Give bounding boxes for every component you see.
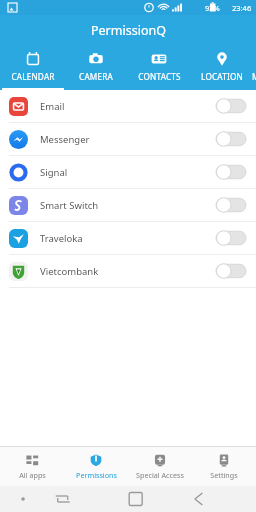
button[interactable]: Special Access [128,447,192,486]
staticText: Special Access [136,470,184,480]
button[interactable]: LOCATION [192,45,252,90]
button[interactable]: Toggle permission [216,131,246,147]
staticText: Email [40,100,216,113]
button[interactable]: M [252,45,256,90]
button[interactable]: CONTACTS [126,45,192,90]
staticText: Messenger [40,133,216,146]
staticText: All apps [19,470,46,480]
button[interactable]: Toggle permission [216,263,246,279]
staticText: M [252,71,256,82]
staticText: Vietcombank [40,265,216,278]
staticText: Settings [210,470,238,480]
staticText: Traveloka [40,232,216,245]
button[interactable]: Toggle permission [216,197,246,213]
staticText: 92% [205,3,220,13]
staticText: Permissions [76,470,117,480]
button[interactable]: Messenger [0,123,256,155]
button[interactable]: Email [0,90,256,122]
staticText: CAMERA [79,71,113,82]
button[interactable]: Toggle permission [216,98,246,114]
button[interactable]: All apps [0,447,64,486]
staticText: CONTACTS [138,71,181,82]
button[interactable]: Traveloka [0,222,256,254]
button[interactable]: Toggle permission [216,164,246,180]
button[interactable]: CAMERA [66,45,126,90]
staticText: PermissionQ [91,22,166,39]
staticText: Signal [40,166,216,179]
button[interactable]: Permissions [64,447,128,486]
staticText: 23:46 [232,3,252,13]
staticText: LOCATION [201,71,243,82]
button[interactable]: CALENDAR [0,45,66,90]
button[interactable]: Smart Switch [0,189,256,221]
button[interactable]: Vietcombank [0,255,256,287]
button[interactable]: Signal [0,156,256,188]
staticText: CALENDAR [11,71,55,82]
staticText: Smart Switch [40,199,216,212]
button[interactable]: Settings [192,447,256,486]
button[interactable]: Toggle permission [216,230,246,246]
